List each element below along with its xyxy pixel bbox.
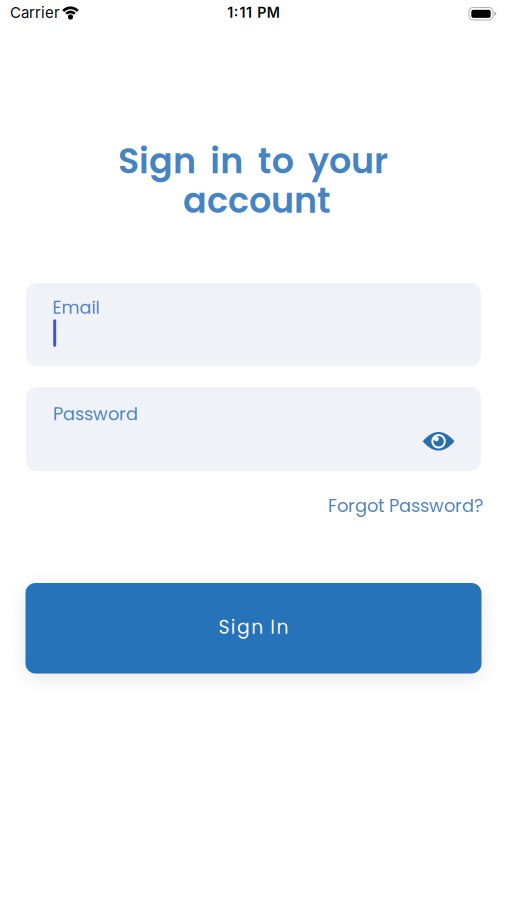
staticText: to bbox=[258, 136, 294, 185]
button[interactable]: Email bbox=[26, 283, 481, 366]
staticText: Email bbox=[52, 295, 99, 320]
staticText: Carrier bbox=[10, 3, 60, 22]
staticText: i bbox=[231, 614, 236, 640]
staticText: your bbox=[308, 136, 388, 185]
staticText: n bbox=[251, 614, 263, 640]
staticText: Sign bbox=[118, 136, 196, 185]
button[interactable]: Password bbox=[26, 387, 481, 471]
staticText: Password bbox=[53, 401, 138, 426]
staticText: n bbox=[276, 614, 288, 640]
staticText: in bbox=[210, 136, 243, 185]
staticText: Forgot Password? bbox=[328, 493, 483, 518]
staticText: 1:11 PM bbox=[227, 4, 280, 21]
button[interactable] bbox=[417, 419, 461, 463]
button[interactable]: S bbox=[25, 583, 481, 673]
staticText: g bbox=[237, 614, 250, 640]
button[interactable]: Forgot Password? bbox=[28, 493, 483, 518]
staticText: account bbox=[183, 176, 331, 225]
staticText: I bbox=[270, 614, 275, 640]
staticText: S bbox=[219, 614, 230, 640]
